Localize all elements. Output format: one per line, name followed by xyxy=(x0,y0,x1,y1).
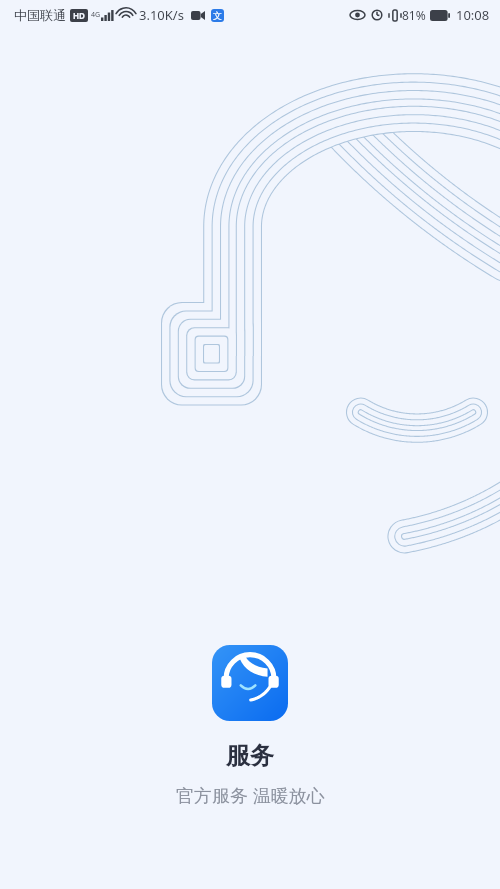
staticText: HD xyxy=(73,10,85,21)
staticText: 官方服务 温暖放心 xyxy=(176,783,325,808)
staticText: 4G xyxy=(91,10,101,20)
staticText: 中国联通 xyxy=(14,7,66,23)
staticText: 81% xyxy=(402,7,426,23)
staticText: 3.10K/s xyxy=(139,6,184,24)
staticText: 10:08 xyxy=(456,6,490,24)
staticText: 服务 xyxy=(226,741,274,771)
staticText: 文 xyxy=(213,10,222,21)
